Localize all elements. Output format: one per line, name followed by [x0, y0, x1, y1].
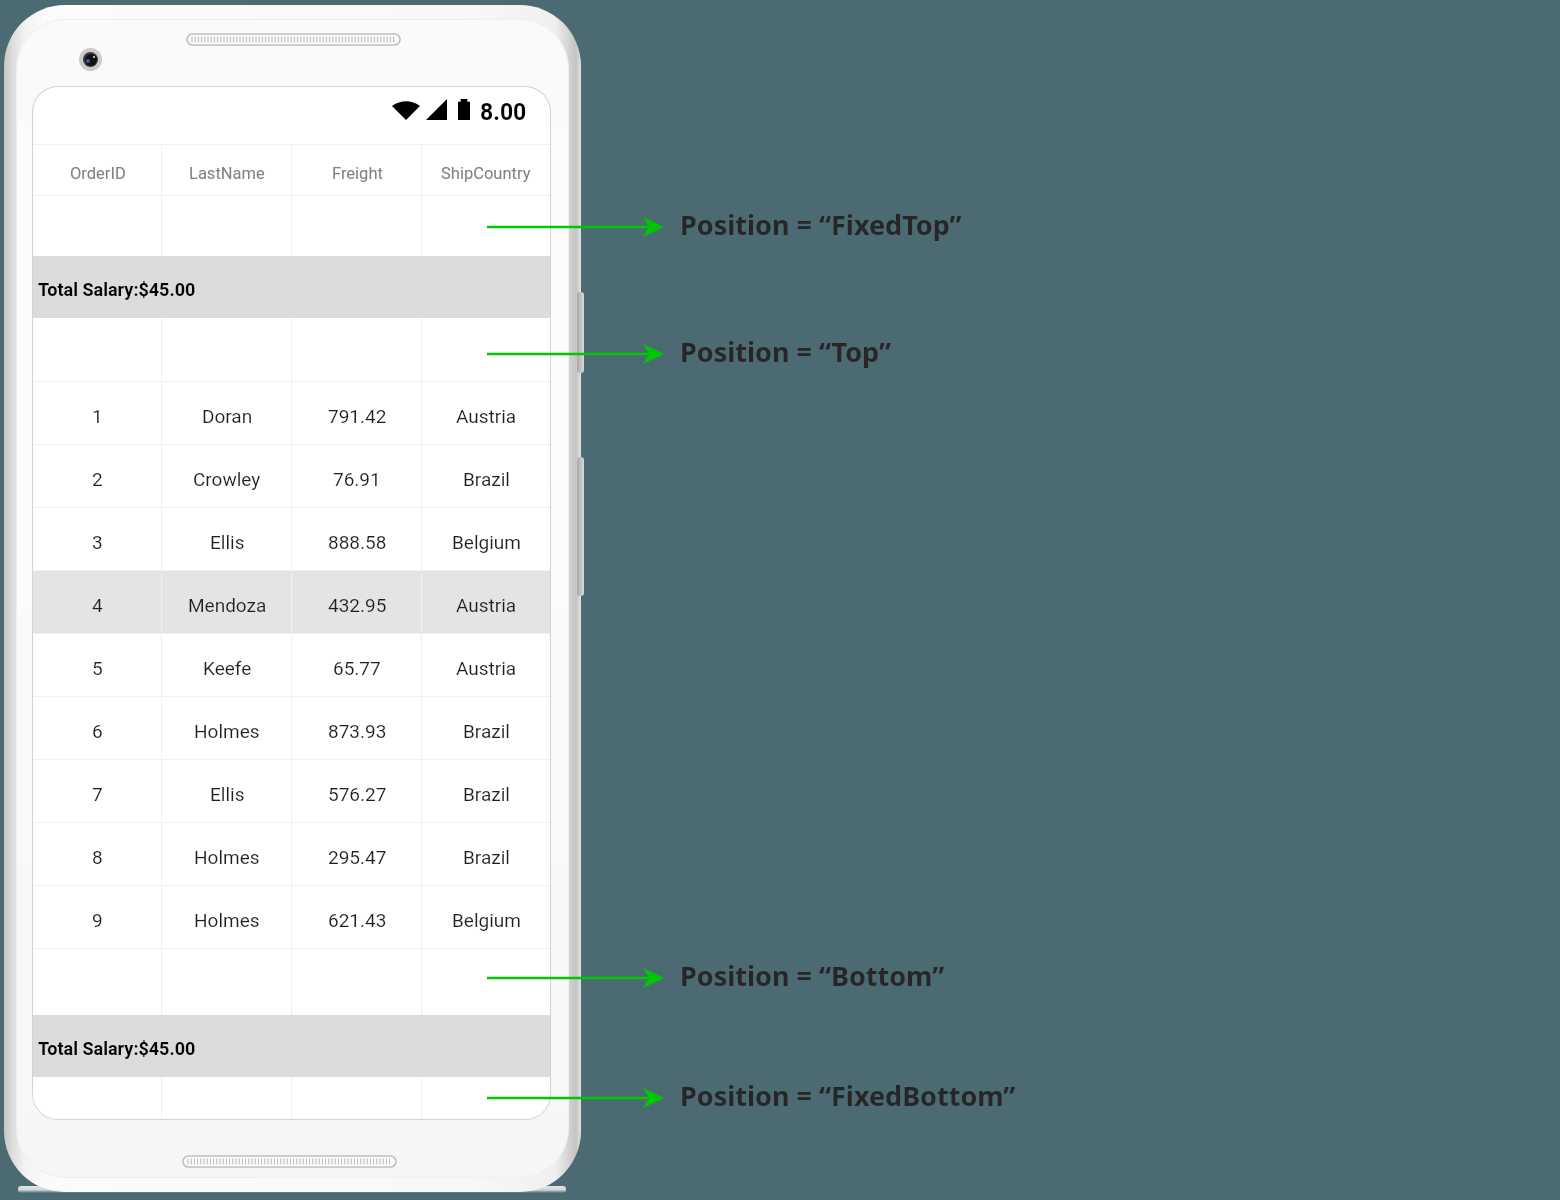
- staticText: 7: [92, 783, 103, 805]
- button[interactable]: [33, 196, 550, 256]
- staticText: Austria: [456, 594, 517, 616]
- button[interactable]: 1: [33, 382, 550, 444]
- staticText: ShipCountry: [441, 164, 531, 183]
- staticText: 888.58: [328, 531, 387, 553]
- button[interactable]: 2: [33, 445, 550, 507]
- button[interactable]: Power button: [577, 292, 584, 373]
- button[interactable]: 3: [33, 508, 550, 570]
- staticText: Brazil: [463, 468, 510, 490]
- button[interactable]: 5: [33, 634, 550, 696]
- staticText: Holmes: [194, 720, 260, 742]
- staticText: 5: [92, 657, 103, 679]
- other: Mobile signal: [426, 99, 447, 120]
- staticText: 8: [92, 846, 103, 868]
- staticText: 791.42: [328, 405, 387, 427]
- staticText: 1: [92, 405, 103, 427]
- button[interactable]: Position = “FixedBottom”: [487, 1073, 1016, 1123]
- staticText: 873.93: [328, 720, 387, 742]
- staticText: LastName: [189, 164, 265, 183]
- staticText: Total Salary:$45.00: [38, 279, 196, 300]
- button[interactable]: [33, 949, 550, 1015]
- button[interactable]: 4: [33, 571, 550, 633]
- staticText: 76.91: [333, 468, 381, 490]
- staticText: Ellis: [210, 531, 245, 553]
- button[interactable]: OrderID: [33, 145, 550, 195]
- staticText: Position = “FixedTop”: [680, 206, 962, 243]
- other: Wi-Fi: [392, 100, 420, 120]
- staticText: 621.43: [328, 909, 387, 931]
- staticText: Doran: [202, 405, 253, 427]
- staticText: Brazil: [463, 720, 510, 742]
- button[interactable]: 7: [33, 760, 550, 822]
- other: Front camera: [79, 48, 102, 71]
- staticText: 6: [92, 720, 103, 742]
- other: Battery: [458, 99, 470, 120]
- staticText: Ellis: [210, 783, 245, 805]
- button[interactable]: Total Salary:$45.00: [33, 1015, 550, 1077]
- staticText: Keefe: [203, 657, 252, 679]
- button[interactable]: Position = “Bottom”: [487, 953, 945, 1003]
- staticText: Brazil: [463, 846, 510, 868]
- staticText: OrderID: [70, 164, 126, 183]
- staticText: Position = “Top”: [680, 333, 891, 370]
- staticText: Brazil: [463, 783, 510, 805]
- button[interactable]: 8: [33, 823, 550, 885]
- button[interactable]: Position = “FixedTop”: [487, 202, 962, 252]
- staticText: 9: [92, 909, 103, 931]
- staticText: Austria: [456, 657, 517, 679]
- staticText: Belgium: [452, 909, 521, 931]
- staticText: 432.95: [328, 594, 387, 616]
- staticText: 295.47: [328, 846, 387, 868]
- staticText: Freight: [332, 164, 383, 183]
- staticText: Holmes: [194, 846, 260, 868]
- button[interactable]: Total Salary:$45.00: [33, 256, 550, 318]
- button[interactable]: 6: [33, 697, 550, 759]
- button[interactable]: [33, 318, 550, 381]
- button[interactable]: 9: [33, 886, 550, 948]
- button[interactable]: [33, 1077, 550, 1119]
- staticText: 4: [92, 594, 103, 616]
- staticText: 65.77: [333, 657, 381, 679]
- button[interactable]: Volume button: [577, 457, 584, 596]
- staticText: Crowley: [193, 468, 261, 490]
- staticText: Position = “FixedBottom”: [680, 1077, 1016, 1114]
- staticText: Total Salary:$45.00: [38, 1038, 196, 1059]
- staticText: Holmes: [194, 909, 260, 931]
- button[interactable]: Position = “Top”: [487, 329, 891, 379]
- staticText: 3: [92, 531, 103, 553]
- staticText: 2: [92, 468, 103, 490]
- staticText: Position = “Bottom”: [680, 957, 945, 994]
- staticText: Austria: [456, 405, 517, 427]
- staticText: 8.00: [480, 99, 527, 126]
- staticText: Belgium: [452, 531, 521, 553]
- staticText: 576.27: [328, 783, 387, 805]
- staticText: Mendoza: [188, 594, 267, 616]
